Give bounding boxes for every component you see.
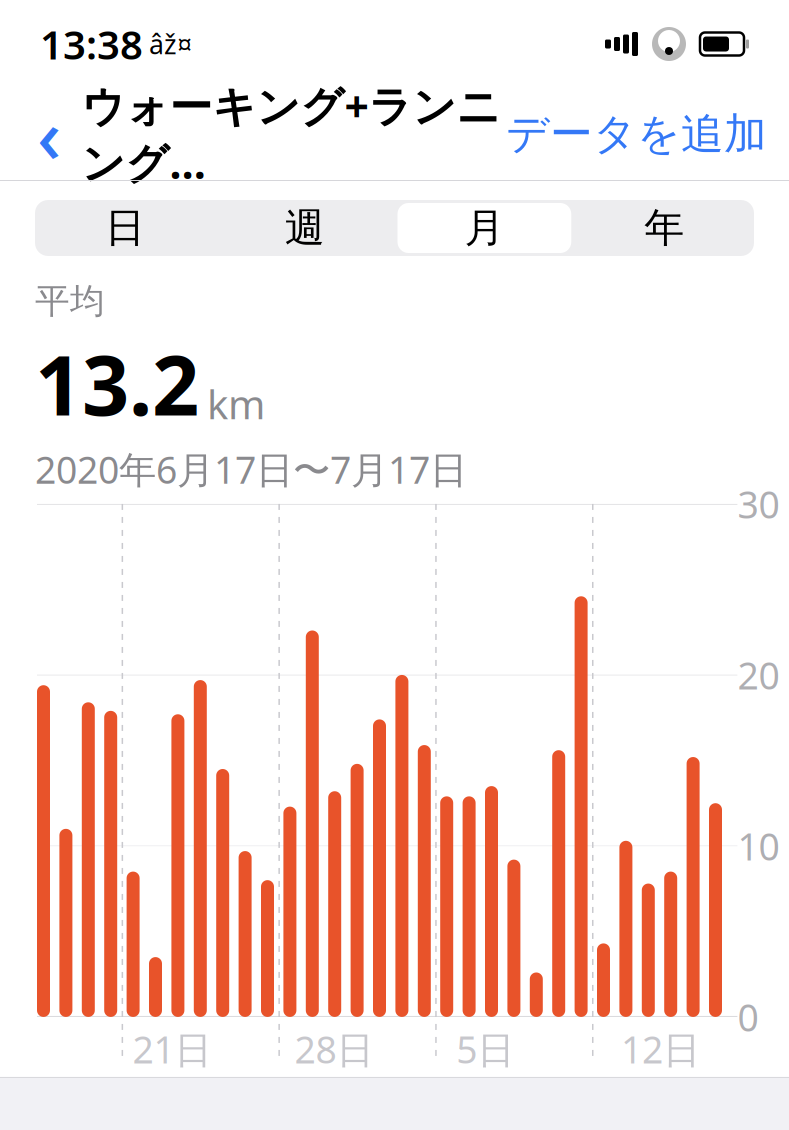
staticText: 28日 <box>294 1024 373 1074</box>
staticText: データを追加 <box>506 108 767 160</box>
staticText: ‹ <box>37 84 61 184</box>
staticText: 13.2 <box>35 329 199 438</box>
staticText: 週 <box>285 203 325 252</box>
button[interactable]: 週 <box>215 200 395 256</box>
staticText: 30 <box>737 479 779 529</box>
staticText: âž¤ <box>149 26 192 62</box>
button[interactable]: 月 <box>394 200 574 256</box>
staticText: 平均 <box>35 280 105 323</box>
staticText: 月 <box>464 203 504 252</box>
staticText: 年 <box>644 203 684 252</box>
button[interactable]: データを追加 <box>506 108 767 160</box>
staticText: 5日 <box>456 1024 514 1074</box>
staticText: ウォーキング+ランニング… <box>81 77 500 191</box>
staticText: km <box>207 377 265 430</box>
button[interactable]: 日 <box>35 200 215 256</box>
staticText: 10 <box>737 821 779 871</box>
button[interactable]: 年 <box>574 200 754 256</box>
staticText: 20 <box>737 650 779 700</box>
staticText: 12日 <box>621 1024 700 1074</box>
staticText: 0 <box>737 992 758 1042</box>
button[interactable]: 戻る <box>22 102 76 166</box>
staticText: 日 <box>105 203 145 252</box>
staticText: 13:38 <box>40 17 143 70</box>
staticText: 2020年6月17日〜7月17日 <box>35 444 467 494</box>
staticText: 21日 <box>133 1024 212 1074</box>
